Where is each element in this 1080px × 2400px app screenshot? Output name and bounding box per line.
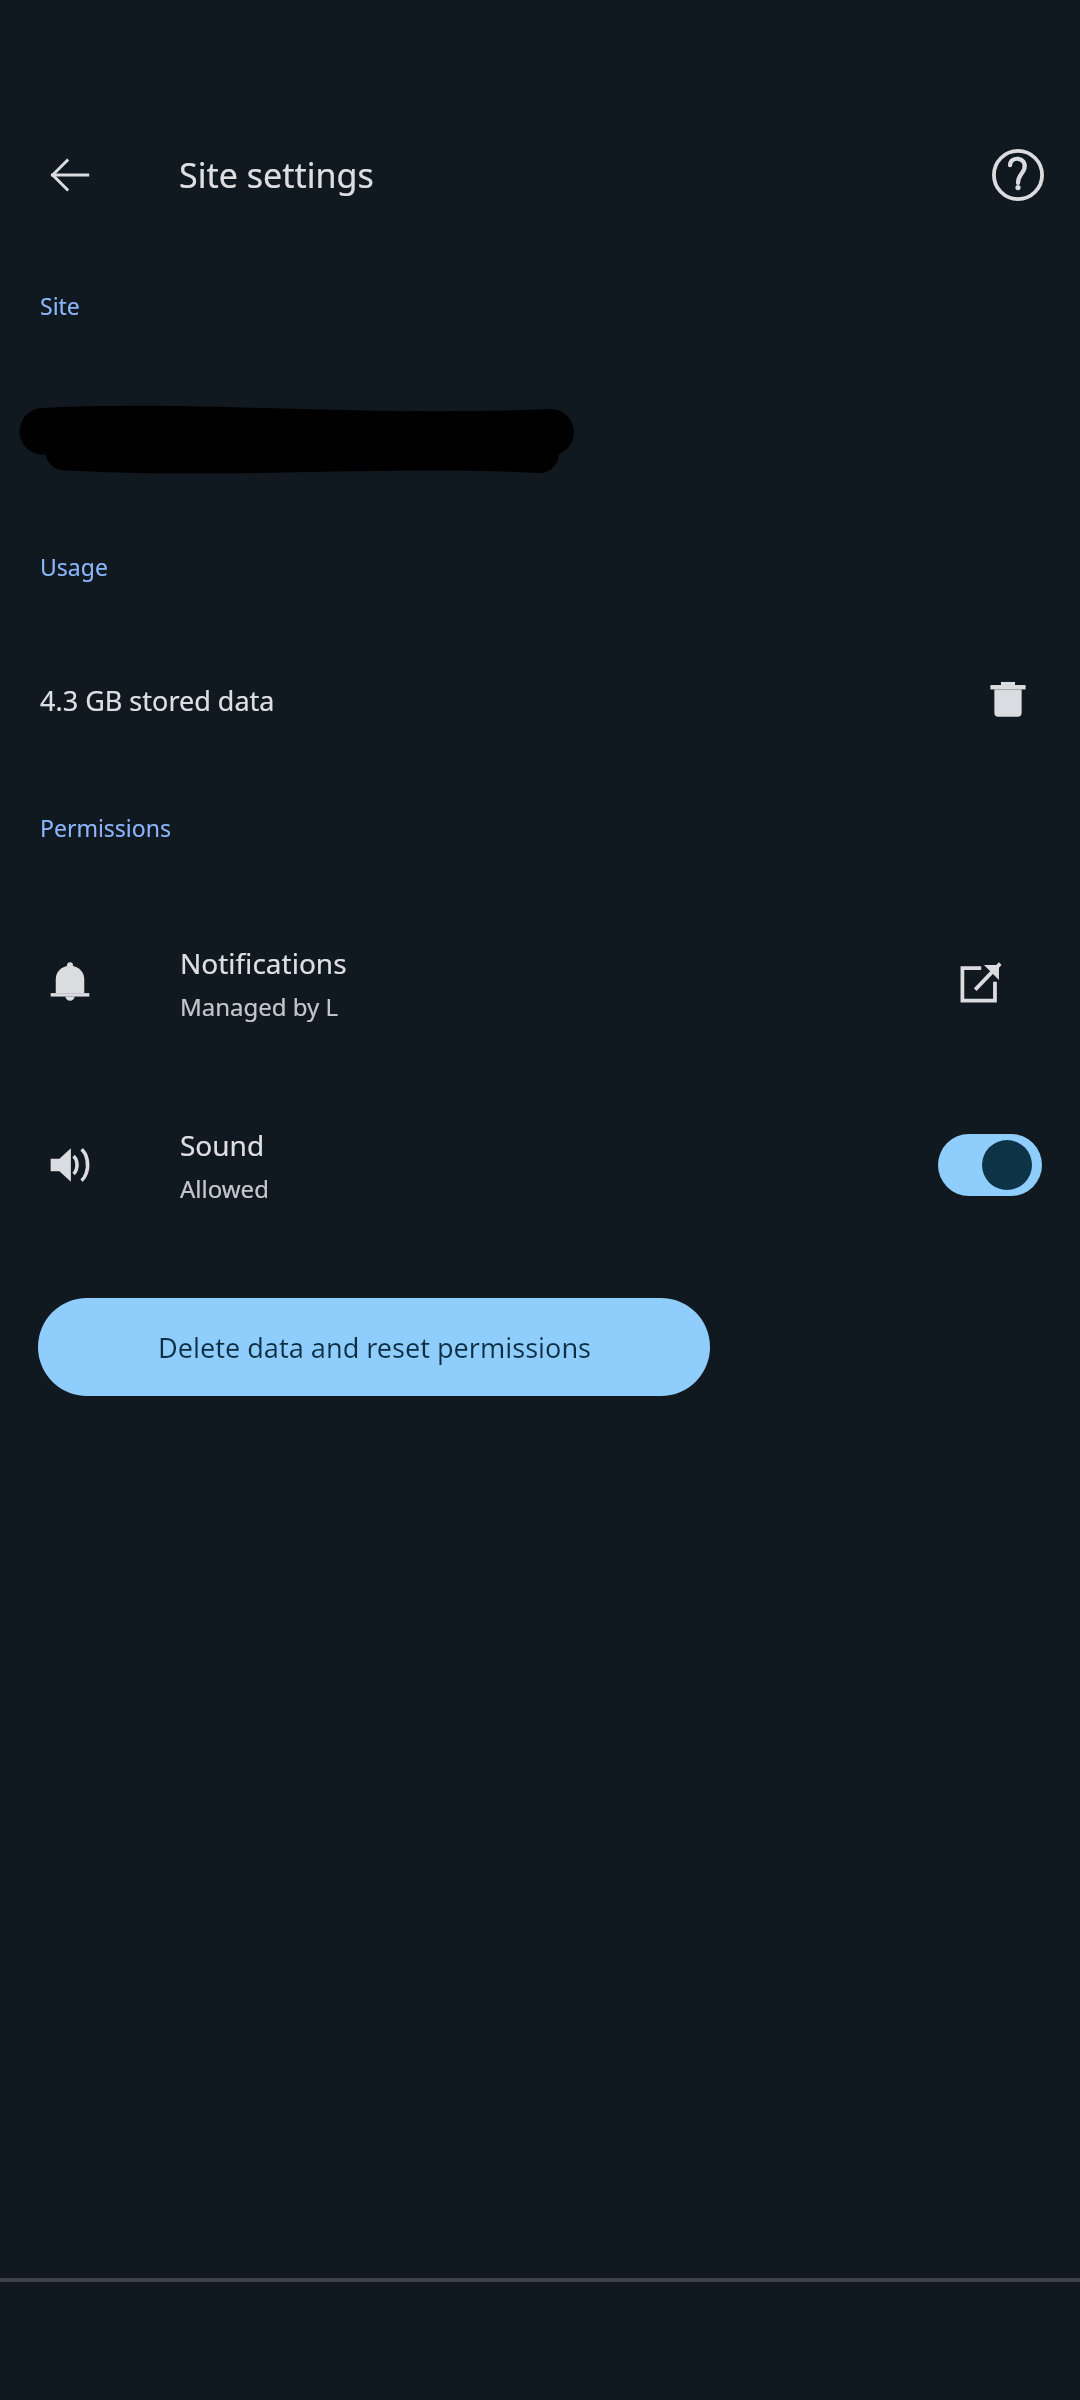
button[interactable]: Help: [970, 127, 1066, 223]
staticText: Site: [40, 290, 80, 321]
staticText: Notifications: [180, 944, 347, 982]
button[interactable]: Delete data and reset permissions: [38, 1298, 710, 1396]
button[interactable]: Back: [22, 127, 118, 223]
button[interactable]: Sound: [0, 1092, 1080, 1238]
staticText: 4.3 GB stored data: [40, 682, 275, 719]
staticText: Usage: [40, 551, 108, 582]
button[interactable]: Delete stored data: [964, 656, 1052, 744]
button[interactable]: 4.3 GB stored data: [0, 640, 1080, 760]
staticText: Permissions: [40, 812, 171, 843]
button[interactable]: Open notification settings: [936, 939, 1024, 1027]
staticText: Site settings: [179, 152, 374, 198]
staticText: Delete data and reset permissions: [158, 1329, 591, 1366]
staticText: Sound: [180, 1126, 265, 1164]
button[interactable]: Sound allowed toggle: [938, 1134, 1042, 1196]
staticText: Managed by L: [180, 990, 339, 1023]
button[interactable]: Notifications: [0, 910, 1080, 1056]
staticText: Allowed: [180, 1172, 269, 1205]
